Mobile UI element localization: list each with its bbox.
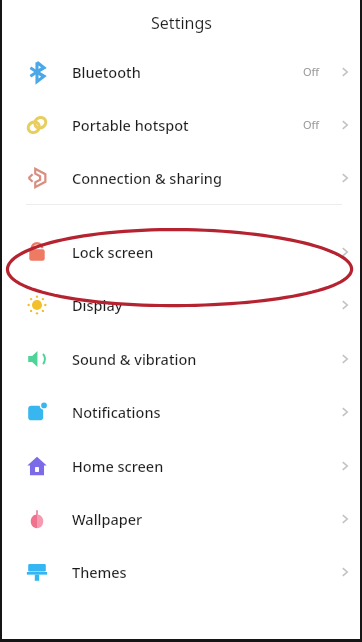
staticText: Themes [72,562,330,582]
staticText: Portable hotspot [72,115,303,135]
button[interactable]: Wallpaper [2,492,360,545]
other: Themes [26,561,48,583]
staticText: Lock screen [72,242,330,262]
button[interactable]: Connection and sharing [2,151,360,204]
staticText: Settings [151,12,212,34]
button[interactable]: Notifications [2,385,360,439]
other: Notifications [26,401,48,423]
staticText: Off [303,117,320,132]
other: Bluetooth [26,61,48,83]
button[interactable]: Themes [2,545,360,598]
staticText: Home screen [72,456,330,476]
button[interactable]: Sound and vibration [2,332,360,385]
staticText: Sound & vibration [72,349,330,369]
staticText: Notifications [72,402,330,422]
staticText: Display [72,295,330,315]
other: Connection and sharing [26,167,48,189]
staticText: Connection & sharing [72,168,330,188]
button[interactable]: Lock screen [2,225,360,278]
button[interactable]: Bluetooth [2,45,360,98]
other: Display [26,294,48,316]
other: Wallpaper [26,508,48,530]
other: Portable hotspot [26,114,48,136]
button[interactable]: Display [2,278,360,332]
other: Sound and vibration [26,348,48,370]
other: Home screen [26,455,48,477]
staticText: Bluetooth [72,62,303,82]
staticText: Wallpaper [72,509,330,529]
staticText: Off [303,64,320,79]
other: Lock screen [26,241,48,263]
button[interactable]: Home screen [2,439,360,492]
button[interactable]: Portable hotspot [2,98,360,151]
